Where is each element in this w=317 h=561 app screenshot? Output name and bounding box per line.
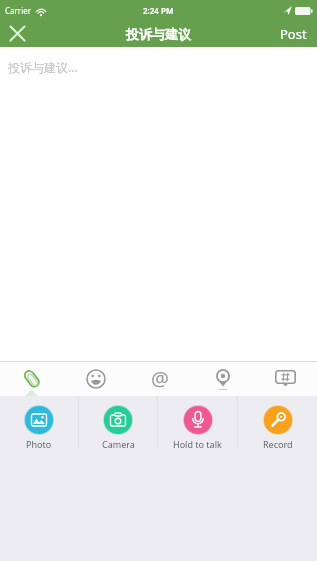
button[interactable]: Photo <box>0 396 78 455</box>
button[interactable]: Record <box>238 396 317 455</box>
staticText: @ <box>151 365 169 392</box>
button[interactable] <box>0 20 34 47</box>
button[interactable]: Post <box>270 20 317 47</box>
button[interactable]: Hold to talk <box>158 396 237 455</box>
staticText: Carrier <box>5 5 32 16</box>
button[interactable] <box>191 362 254 396</box>
staticText: Hold to talk <box>173 438 222 450</box>
button[interactable]: @ <box>128 362 191 396</box>
staticText: Record <box>263 438 293 450</box>
button[interactable] <box>64 362 128 396</box>
staticText: 投诉与建议 <box>126 26 191 42</box>
staticText: Camera <box>102 438 135 450</box>
staticText: 投诉与建议... <box>8 59 78 75</box>
button[interactable]: Camera <box>79 396 157 455</box>
button[interactable] <box>254 362 317 396</box>
staticText: Post <box>280 25 307 43</box>
staticText: Photo <box>26 438 52 450</box>
button[interactable] <box>0 362 64 396</box>
staticText: 2:24 PM <box>143 5 174 16</box>
